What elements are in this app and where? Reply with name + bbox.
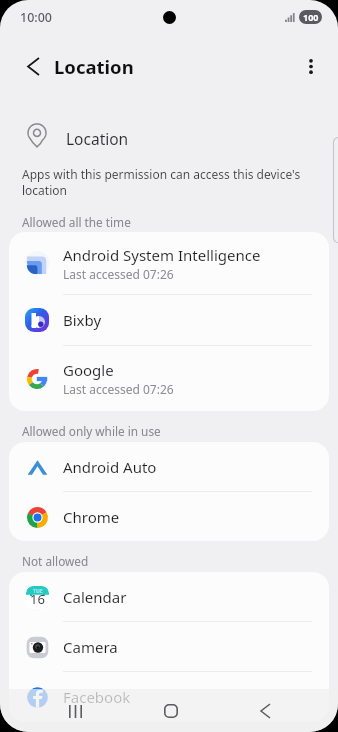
staticText: 10:00 (20, 9, 53, 26)
staticText: Chrome (63, 507, 120, 527)
button[interactable]: Recent apps (52, 690, 98, 732)
staticText: Not allowed (22, 553, 89, 569)
button[interactable]: More options (293, 48, 329, 84)
button[interactable]: Home (148, 690, 194, 732)
staticText: Bixby (63, 310, 102, 330)
staticText: 100 (303, 11, 319, 23)
staticText: Google (63, 360, 114, 380)
staticText: 16 (30, 590, 45, 608)
staticText: Location (54, 54, 134, 79)
button[interactable]: Google (9, 346, 329, 411)
staticText: Apps with this permission can access thi… (22, 166, 308, 199)
button[interactable]: Bixby (9, 295, 329, 345)
staticText: Android Auto (63, 457, 157, 477)
staticText: Allowed only while in use (22, 423, 161, 439)
staticText: Facebook (63, 687, 131, 707)
button[interactable]: Chrome (9, 492, 329, 541)
button[interactable]: Android Auto (9, 442, 329, 491)
button[interactable]: TUE (9, 572, 329, 621)
staticText: TUE (33, 588, 43, 595)
button[interactable]: Back (242, 690, 288, 732)
staticText: Camera (63, 637, 118, 657)
button[interactable]: Camera (9, 622, 329, 671)
staticText: Last accessed 07:26 (63, 381, 174, 397)
button[interactable]: Android System Intelligence (9, 232, 329, 295)
staticText: Allowed all the time (22, 214, 131, 230)
button[interactable]: Facebook (9, 672, 329, 721)
staticText: Last accessed 07:26 (63, 266, 174, 282)
staticText: Location (66, 128, 129, 149)
staticText: Android System Intelligence (63, 245, 261, 265)
button[interactable]: Navigate up (15, 48, 51, 84)
staticText: Calendar (63, 587, 127, 607)
